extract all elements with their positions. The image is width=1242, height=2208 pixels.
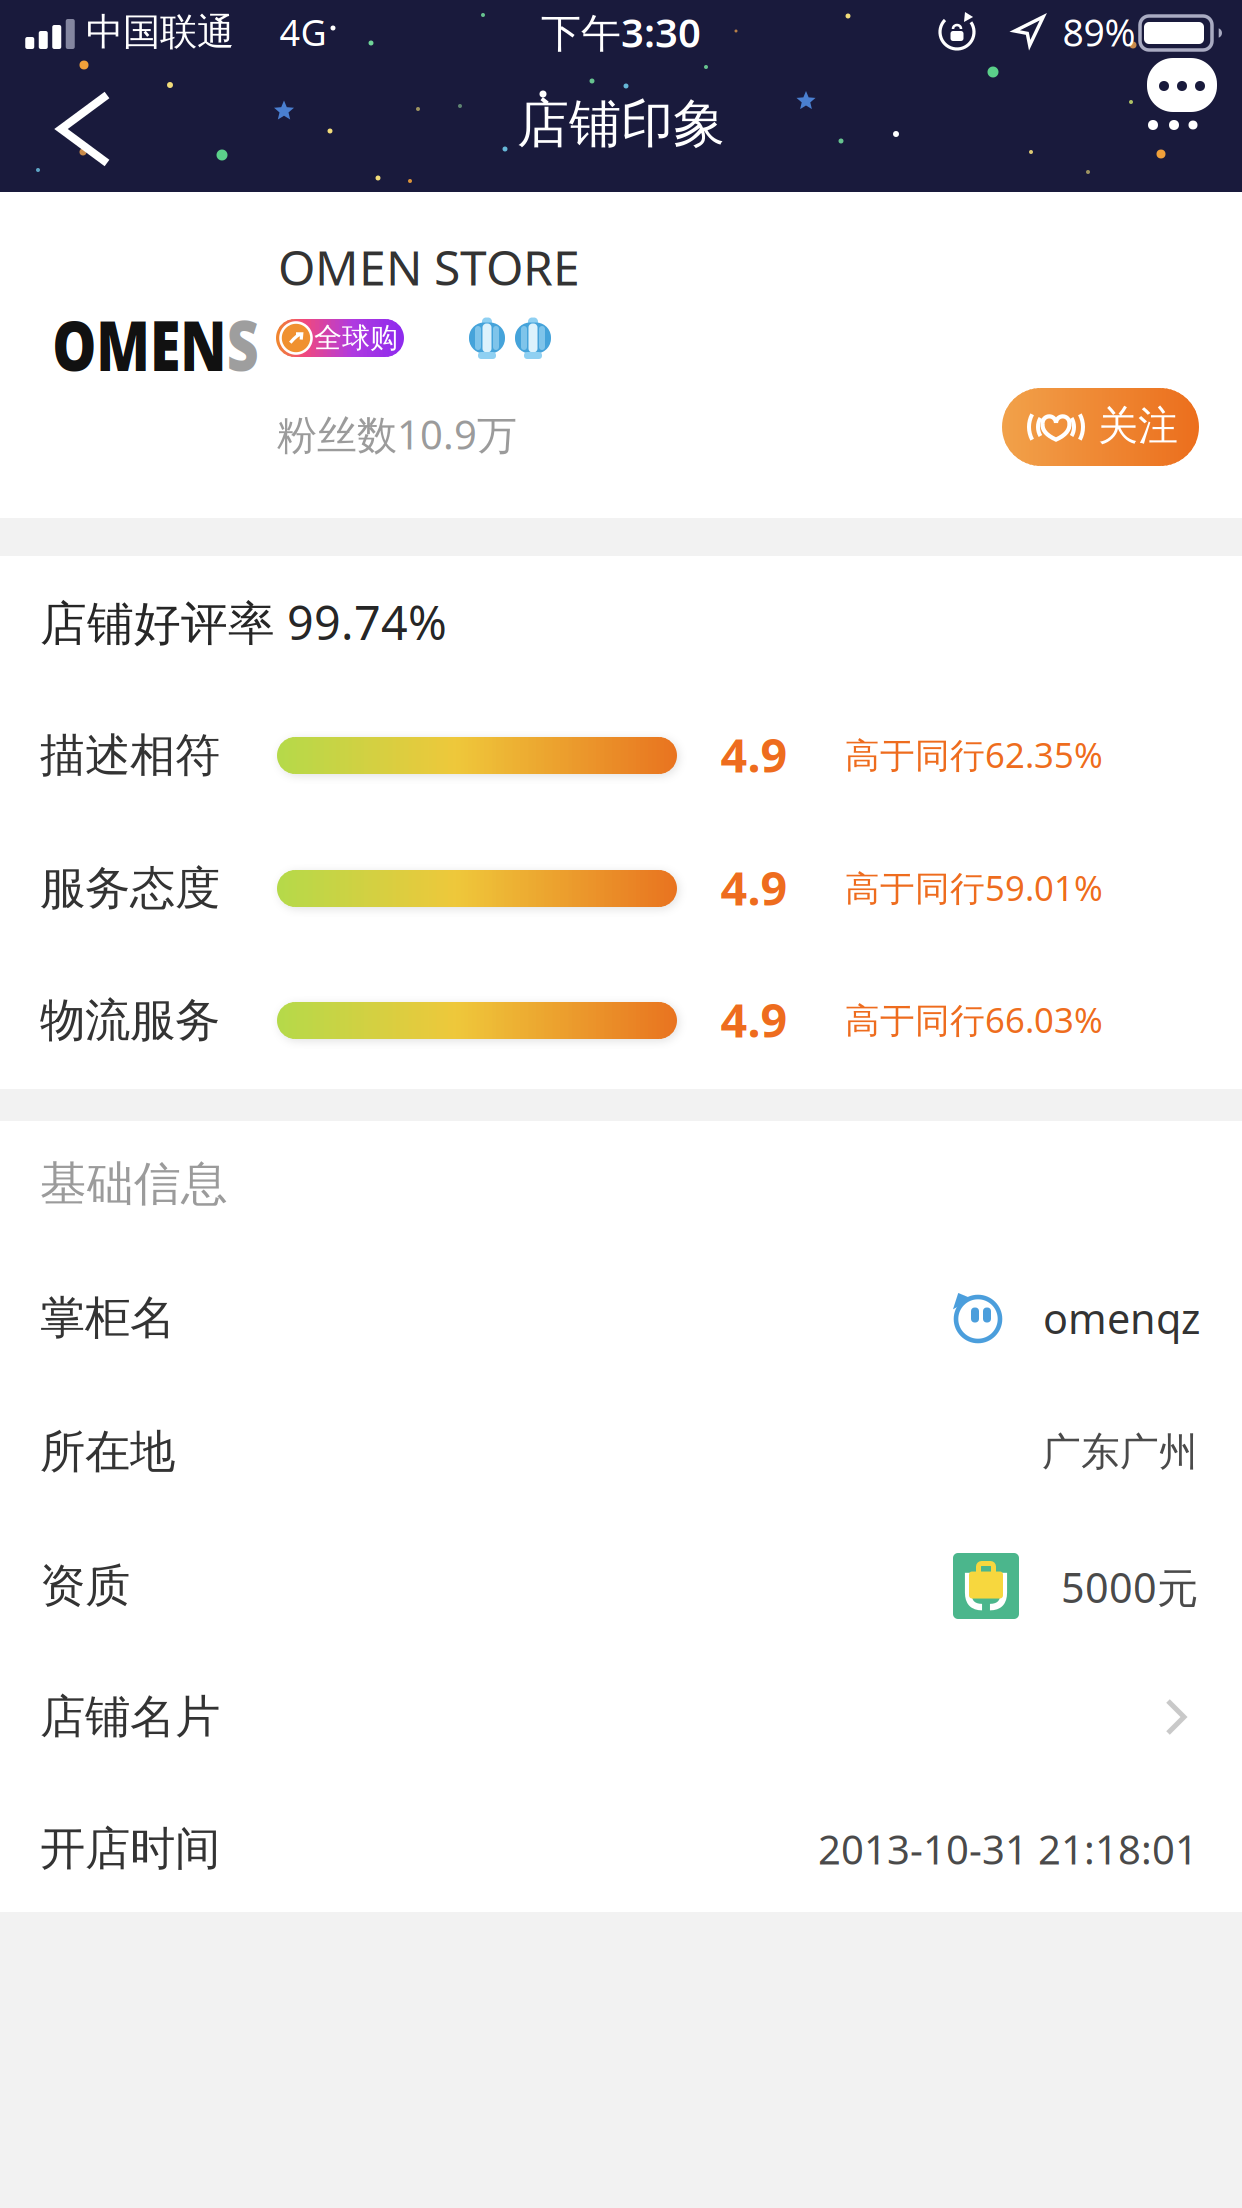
staticText: 掌柜名 (40, 1290, 175, 1346)
staticText: 粉丝数10.9万 (277, 407, 517, 460)
button[interactable]: 联系掌柜 (952, 1293, 1002, 1343)
staticText: 描述相符 (40, 728, 220, 783)
button[interactable]: 关注 (1002, 388, 1199, 466)
staticText: 中国联通 (86, 9, 234, 55)
staticText: 店铺印象 (517, 92, 725, 156)
staticText: 4.9 (720, 723, 787, 785)
button[interactable]: 返回 (61, 95, 107, 163)
staticText: 5000元 (1061, 1560, 1198, 1614)
staticText: 4G (279, 8, 326, 56)
staticText: 物流服务 (40, 993, 220, 1048)
staticText: 开店时间 (40, 1821, 220, 1877)
staticText: 2013-10-31 21:18:01 (818, 1822, 1198, 1875)
staticText: 关注 (1098, 401, 1178, 450)
button[interactable]: 消息 (1147, 58, 1223, 132)
staticText: S (244, 298, 284, 390)
staticText: 店铺名片 (40, 1689, 220, 1745)
staticText: 4.9 (720, 988, 787, 1050)
staticText: 店铺好评率 99.74% (40, 591, 447, 653)
staticText: 基础信息 (40, 1155, 228, 1213)
staticText: OMEN STORE (278, 235, 580, 299)
staticText: 所在地 (40, 1424, 175, 1480)
staticText: 下午3:30 (541, 5, 701, 58)
staticText: 服务态度 (40, 861, 220, 916)
staticText: 高于同行59.01% (845, 864, 1103, 910)
staticText: omenqz (1043, 1291, 1200, 1345)
staticText: 4.9 (720, 856, 787, 918)
button[interactable]: 店铺名片 (40, 1667, 1202, 1767)
staticText: OMEN (26, 298, 244, 390)
staticText: 资质 (40, 1558, 130, 1614)
staticText: 高于同行66.03% (845, 996, 1103, 1042)
staticText: 广东广州 (1042, 1428, 1198, 1476)
staticText: 高于同行62.35% (845, 731, 1103, 777)
staticText: 全球购 (314, 321, 398, 355)
staticText: 89% (1062, 7, 1135, 57)
